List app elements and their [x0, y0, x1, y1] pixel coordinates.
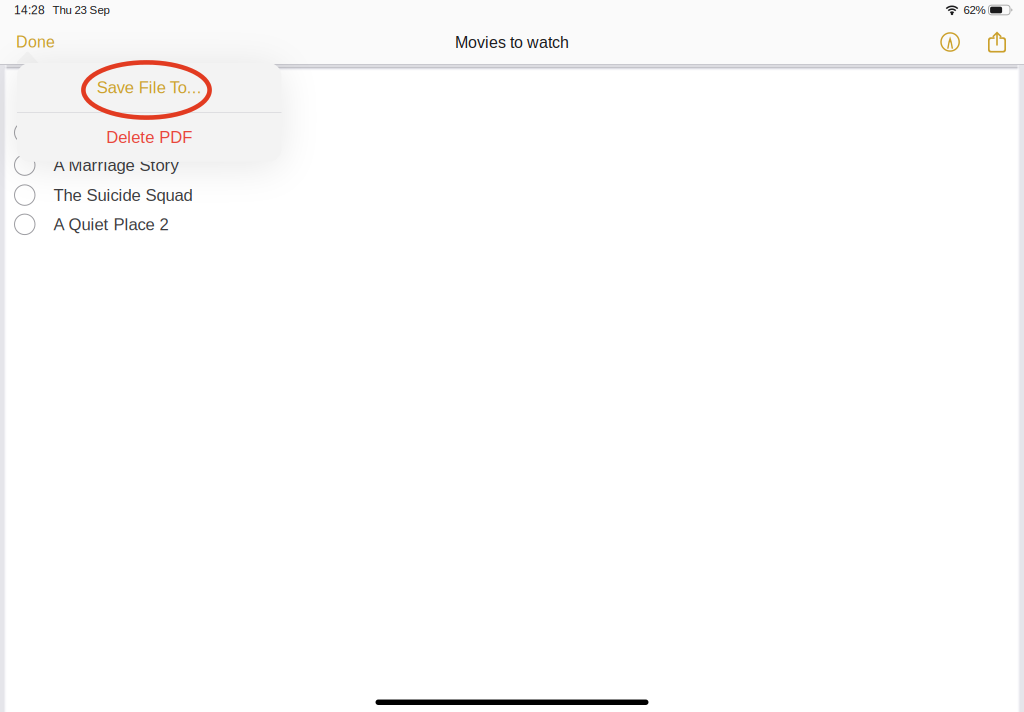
button[interactable]: A Quiet Place 2	[4, 210, 1020, 239]
staticText: The Suicide Squad	[53, 186, 192, 204]
staticText: Thu 23 Sep	[52, 4, 109, 16]
staticText: Save File To...	[97, 78, 202, 97]
button[interactable]: Done	[11, 25, 60, 59]
button[interactable]: The Suicide Squad	[4, 181, 1020, 210]
button[interactable]: Last Night in Soho	[4, 116, 1020, 150]
staticText: A Marriage Story	[53, 156, 178, 174]
button[interactable]: Save File To...	[17, 63, 281, 112]
staticText: Last Night in Soho	[53, 123, 189, 142]
staticText: A Quiet Place 2	[53, 215, 168, 234]
button[interactable]: A Marriage Story	[4, 150, 1020, 181]
staticText: Delete PDF	[106, 128, 192, 147]
button[interactable]: Markup	[936, 28, 964, 56]
staticText: 14:28	[14, 3, 45, 17]
staticText: 62%	[963, 4, 985, 16]
button[interactable]: Delete PDF	[17, 113, 281, 162]
staticText: Movies to watch	[455, 34, 569, 51]
staticText: Done	[16, 33, 55, 51]
button[interactable]: Share	[983, 29, 1011, 55]
